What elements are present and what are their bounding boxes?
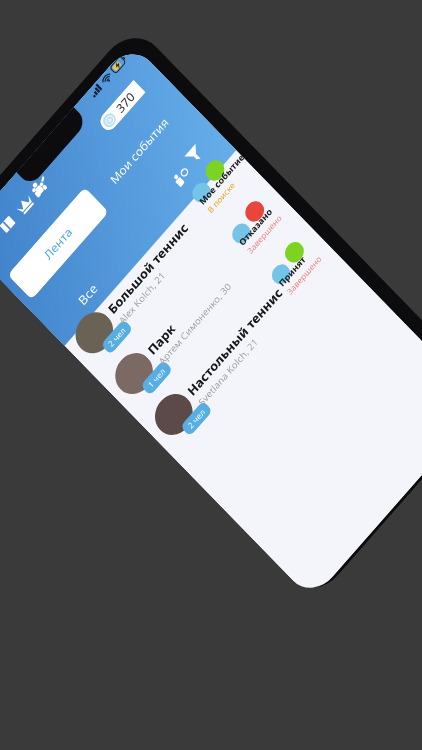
staticText: Лента [41, 224, 76, 263]
staticText: Все [75, 280, 101, 309]
staticText: В поиске [205, 179, 237, 215]
staticText: Завершено [284, 253, 324, 297]
staticText: Настольный теннис [184, 284, 286, 399]
button[interactable]: Friends [27, 172, 54, 201]
staticText: Svetlana Kolch, 21 [196, 335, 260, 408]
staticText: Принят [276, 254, 308, 289]
button[interactable]: 1 чел [104, 191, 316, 428]
staticText: 2 чел [106, 324, 128, 349]
staticText: Парк [144, 320, 179, 358]
button[interactable]: Wallet [0, 208, 22, 238]
button[interactable]: Все [75, 280, 101, 309]
button[interactable]: 370 [97, 80, 146, 134]
staticText: Мои события [107, 114, 172, 187]
staticText: Мое событие [197, 152, 246, 207]
staticText: Артем Симоненко, 30 [156, 280, 233, 367]
button[interactable]: 2 чел [144, 232, 356, 468]
staticText: Отказано [236, 205, 275, 248]
button[interactable]: Rating [11, 190, 38, 219]
staticText: 1 чел [145, 365, 168, 390]
staticText: 370 [113, 89, 138, 116]
button[interactable]: Filter [181, 140, 208, 169]
button[interactable]: 2 чел [64, 150, 276, 387]
button[interactable]: Лента [7, 187, 109, 300]
button[interactable]: Мои события [92, 98, 187, 203]
staticText: Alex Kolch, 21 [116, 269, 168, 326]
staticText: 2 чел [185, 406, 208, 431]
staticText: Завершено [245, 212, 284, 256]
button[interactable]: Find people [168, 160, 197, 192]
staticText: Большой теннис [104, 219, 192, 317]
